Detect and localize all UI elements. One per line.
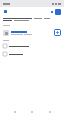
button[interactable]: Add — [0, 27, 64, 38]
button[interactable]: Back — [12, 109, 18, 115]
button[interactable] — [0, 50, 64, 58]
button[interactable] — [0, 42, 64, 50]
button[interactable]: Recents — [47, 109, 53, 115]
button[interactable]: Account — [55, 9, 61, 15]
button[interactable]: Menu — [3, 9, 8, 14]
button[interactable]: Add — [54, 29, 61, 36]
button[interactable]: Search — [49, 9, 54, 14]
button[interactable]: Home — [29, 109, 35, 115]
